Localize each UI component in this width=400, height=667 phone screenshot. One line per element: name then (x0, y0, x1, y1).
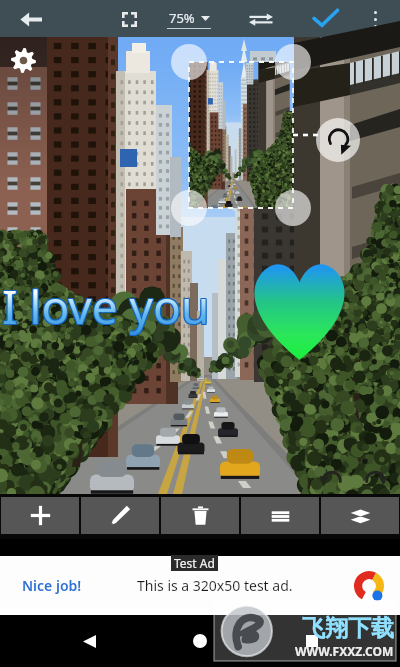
staticText: I love you (1, 274, 209, 337)
button[interactable]: Recent apps (289, 618, 335, 664)
staticText: This is a 320x50 test ad. (137, 576, 293, 595)
button[interactable]: Menu (241, 497, 319, 534)
staticText: 飞翔下载 (302, 614, 394, 643)
staticText: I love you (3, 274, 211, 337)
staticText: I love you (2, 276, 210, 339)
staticText: 75% (169, 9, 195, 27)
button[interactable]: Add (1, 497, 79, 534)
button[interactable]: More options (360, 4, 390, 34)
button[interactable]: Delete (161, 497, 239, 534)
staticText: I love you (1, 275, 209, 338)
staticText: I love you (2, 275, 210, 338)
staticText: I love you (1, 276, 209, 339)
staticText: Nice job! (22, 576, 82, 595)
button[interactable]: Draw (81, 497, 159, 534)
staticText: Test Ad (174, 555, 215, 571)
button[interactable]: Undo (314, 458, 348, 492)
button[interactable]: Apply (308, 2, 342, 36)
button[interactable]: Redo (358, 458, 392, 492)
button[interactable]: Rotate (316, 118, 360, 162)
button[interactable]: Back (66, 618, 112, 664)
staticText: I love you (3, 275, 211, 338)
button[interactable]: Nice job! (0, 556, 400, 615)
button[interactable]: 75% (167, 9, 211, 29)
staticText: I love you (3, 276, 211, 339)
button[interactable]: Fit to screen (114, 4, 144, 34)
button[interactable]: Back (14, 3, 46, 35)
staticText: WWW.FXXZ.COM (295, 643, 394, 659)
button[interactable]: Settings (6, 43, 40, 77)
button[interactable]: Home (177, 618, 223, 664)
staticText: I love you (2, 274, 210, 337)
button[interactable]: Flip (245, 3, 277, 35)
button[interactable]: Layers (321, 497, 399, 534)
